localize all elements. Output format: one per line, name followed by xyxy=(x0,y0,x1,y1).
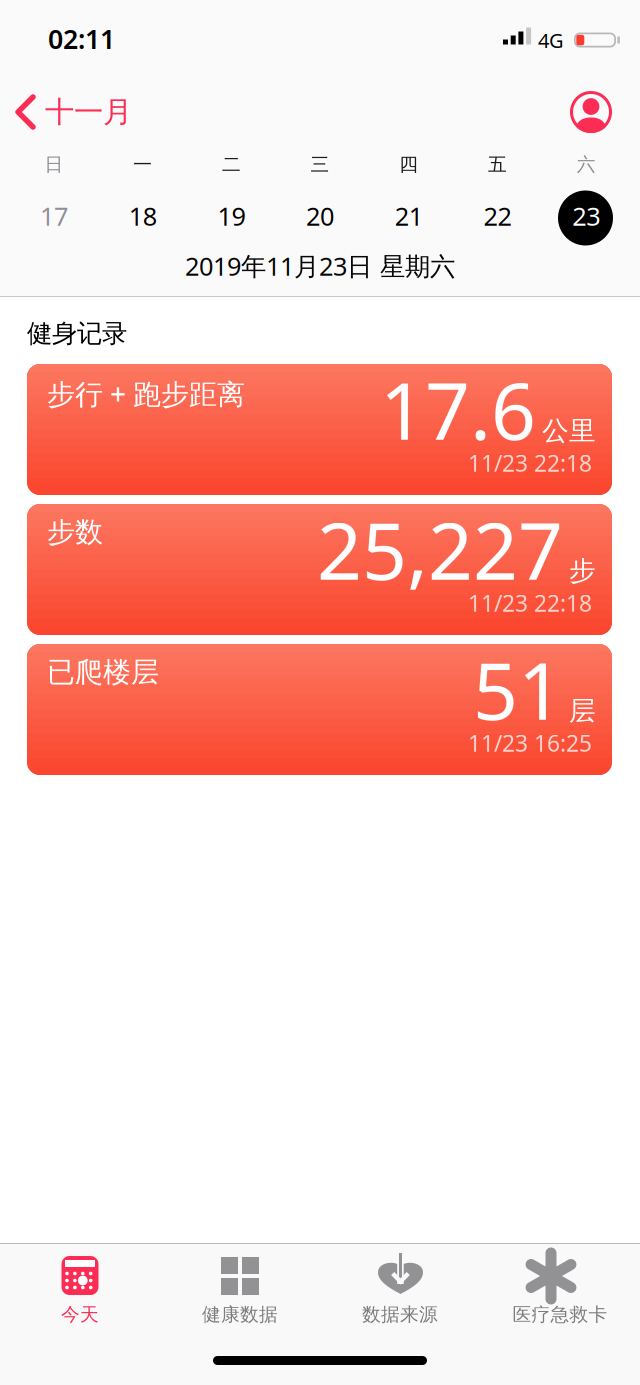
staticText: 层 xyxy=(569,694,596,727)
button[interactable]: 今天 xyxy=(0,1243,160,1343)
staticText: 三 xyxy=(311,153,330,176)
staticText: 21 xyxy=(395,199,423,233)
button[interactable]: 已爬楼层 xyxy=(27,644,612,775)
staticText: 医疗急救卡 xyxy=(512,1303,607,1326)
staticText: 18 xyxy=(129,199,157,233)
staticText: 步行 + 跑步距离 xyxy=(47,375,245,412)
button[interactable]: 医疗急救卡 xyxy=(0,1243,160,1343)
staticText: 已爬楼层 xyxy=(47,655,159,689)
staticText: 11/23 16:25 xyxy=(468,728,592,758)
button[interactable]: 步数 xyxy=(27,504,612,635)
staticText: 11/23 22:18 xyxy=(468,448,592,478)
staticText: 五 xyxy=(488,153,507,176)
staticText: 23 xyxy=(572,199,600,233)
staticText: 健身记录 xyxy=(27,318,127,349)
staticText: 17 xyxy=(40,199,68,233)
button[interactable]: 步行 + 跑步距离 xyxy=(27,364,612,495)
staticText: 22 xyxy=(483,199,511,233)
staticText: 4G xyxy=(538,27,564,54)
staticText: 19 xyxy=(217,199,245,233)
button[interactable]: 十一月 xyxy=(0,0,102,36)
staticText: 今天 xyxy=(61,1303,99,1326)
staticText: 17.6 xyxy=(380,357,536,461)
staticText: 一 xyxy=(133,153,152,176)
staticText: 25,227 xyxy=(317,497,563,601)
staticText: 数据来源 xyxy=(362,1303,438,1326)
staticText: 六 xyxy=(577,153,596,176)
staticText: 公里 xyxy=(542,414,596,447)
button[interactable]: 数据来源 xyxy=(0,1243,160,1343)
staticText: 步数 xyxy=(47,515,103,549)
staticText: 11/23 22:18 xyxy=(468,588,592,618)
staticText: 十一月 xyxy=(45,94,132,130)
staticText: 20 xyxy=(306,199,334,233)
staticText: 02:11 xyxy=(48,21,115,56)
staticText: 2019年11月23日 星期六 xyxy=(185,249,455,283)
staticText: 四 xyxy=(399,153,418,176)
staticText: 二 xyxy=(222,153,241,176)
staticText: 步 xyxy=(569,554,596,587)
staticText: 51 xyxy=(473,637,563,741)
staticText: 日 xyxy=(44,153,63,176)
button[interactable]: 健康数据 xyxy=(0,1243,160,1343)
staticText: 健康数据 xyxy=(202,1303,278,1326)
